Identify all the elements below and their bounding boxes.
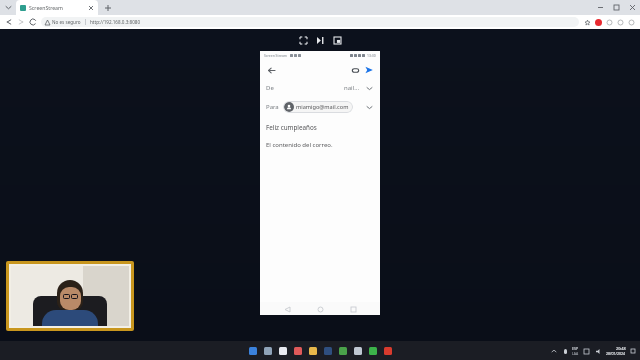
button[interactable]: Back [281, 303, 293, 315]
button[interactable]: Notifications [629, 347, 637, 355]
button[interactable]: Send [362, 63, 376, 77]
button[interactable]: Start [247, 345, 258, 356]
staticText: 13:30 [367, 53, 376, 58]
button[interactable]: Network [582, 347, 591, 356]
staticText: http://192.168.0.3:8080 [90, 19, 141, 25]
staticText: ESP [572, 346, 579, 351]
staticText: miamigo@mail.com [296, 103, 349, 111]
staticText: De [266, 84, 274, 92]
staticText: LAA [572, 351, 579, 356]
button[interactable]: De [260, 79, 380, 97]
button[interactable]: Minimize [592, 0, 608, 15]
staticText: Screen Stream [264, 53, 288, 58]
staticText: ScreenStream [29, 4, 87, 11]
button[interactable]: Back [3, 16, 15, 28]
button[interactable]: Excel [367, 345, 378, 356]
button[interactable]: Chrome [337, 345, 348, 356]
button[interactable]: Close [624, 0, 640, 15]
button[interactable]: Show hidden icons [550, 347, 558, 355]
button[interactable]: Language [572, 346, 579, 356]
button[interactable]: Expand [364, 102, 374, 112]
button[interactable]: Pause stream [314, 34, 327, 47]
button[interactable]: Date and time [606, 346, 626, 356]
button[interactable]: Bookmark [582, 17, 593, 28]
button[interactable]: Extension [593, 17, 604, 28]
staticText: 20:48 [616, 346, 626, 351]
button[interactable]: Fullscreen [297, 34, 310, 47]
staticText: 28/01/2024 [606, 351, 626, 356]
staticText: nail... [344, 84, 359, 92]
button[interactable]: Para [260, 97, 380, 117]
button[interactable]: File Explorer [307, 345, 318, 356]
button[interactable]: Recent apps [347, 303, 359, 315]
button[interactable]: miamigo@mail.com [283, 101, 353, 113]
button[interactable]: Maximize [608, 0, 624, 15]
button[interactable]: Close tab [87, 4, 94, 11]
button[interactable]: Extensions [604, 17, 615, 28]
staticText: No es seguro [52, 19, 81, 25]
button[interactable]: Webcam overlay [11, 266, 129, 326]
button[interactable]: Reload [27, 16, 39, 28]
button[interactable]: No es seguro [41, 17, 579, 27]
button[interactable]: ScreenStream [16, 0, 98, 15]
button[interactable]: Task view [262, 345, 273, 356]
button[interactable]: Home [314, 303, 326, 315]
button[interactable]: Attach file [348, 63, 362, 77]
button[interactable]: Expand [364, 83, 374, 93]
button[interactable]: Menu [626, 17, 637, 28]
staticText: Para [266, 103, 279, 111]
button[interactable]: Settings [352, 345, 363, 356]
button[interactable]: Microphone [561, 347, 569, 355]
button[interactable]: App [292, 345, 303, 356]
button[interactable]: Profile [615, 17, 626, 28]
button[interactable]: Forward [15, 16, 27, 28]
staticText: El contenido del correo. [266, 141, 333, 149]
button[interactable]: Back [264, 63, 278, 77]
button[interactable]: PowerPoint [382, 345, 393, 356]
button[interactable]: Picture in picture [331, 34, 344, 47]
button[interactable]: Volume [594, 347, 603, 356]
button[interactable]: Photos [322, 345, 333, 356]
button[interactable]: New tab [102, 2, 113, 13]
button[interactable]: Search tabs [3, 2, 14, 13]
button[interactable]: Chat [277, 345, 288, 356]
staticText: Feliz cumpleaños [266, 123, 317, 132]
